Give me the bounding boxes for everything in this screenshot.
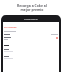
staticText: Confirmación: [24, 18, 38, 21]
staticText: Tu recarga: [4, 25, 17, 28]
staticText: Recarga a Coke al mejor premio: [17, 3, 47, 12]
button[interactable]: Confirmación: [3, 15, 59, 22]
